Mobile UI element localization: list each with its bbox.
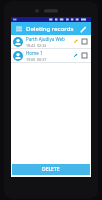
staticText: 19:06 00:37 [26,57,47,62]
button[interactable]: Select record [80,37,89,46]
staticText: Deleting records [26,25,78,33]
button[interactable]: Edit [78,24,88,34]
staticText: 18:43 02:32 [26,43,47,48]
staticText: DELETE [42,166,60,173]
button[interactable]: Home 1 [11,49,91,62]
button[interactable]: Parth Ajudiya Web Dev [11,35,91,48]
button[interactable]: Select record [80,51,89,60]
staticText: Parth Ajudiya Web Dev [26,36,72,42]
button[interactable]: DELETE [12,164,90,175]
button[interactable]: Open navigation menu [14,24,23,33]
staticText: Home 1 [26,50,43,56]
